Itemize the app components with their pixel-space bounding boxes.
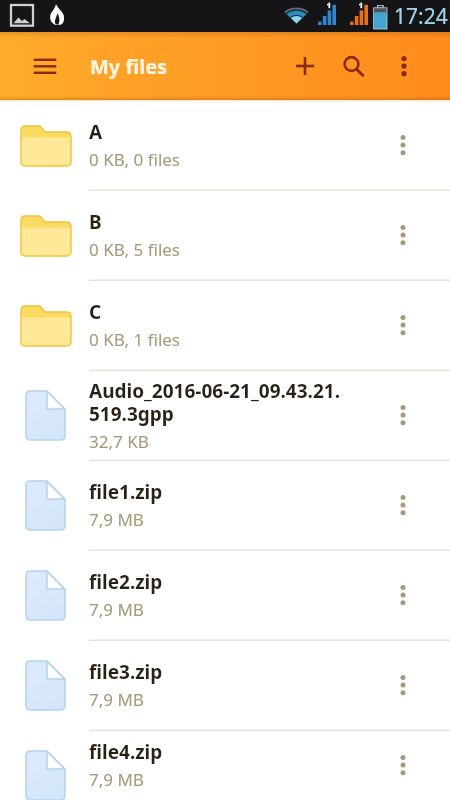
button[interactable]: Search [331, 32, 377, 100]
button[interactable]: Audio_2016-06-21_09.43.21. 519.3gpp [0, 370, 450, 460]
button[interactable]: Item options [380, 190, 426, 280]
button[interactable]: Item options [380, 730, 426, 800]
staticText: B [89, 209, 102, 235]
staticText: 7,9 MB [89, 508, 144, 531]
staticText: C [89, 299, 102, 325]
staticText: My files [90, 53, 168, 80]
button[interactable]: Item options [380, 640, 426, 730]
staticText: 0 KB, 1 files [89, 328, 181, 351]
button[interactable]: Item options [380, 280, 426, 370]
staticText: 7,9 MB [89, 688, 144, 711]
staticText: 7,9 MB [89, 598, 144, 621]
button[interactable]: Add [281, 32, 329, 100]
button[interactable]: file1.zip [0, 460, 450, 550]
button[interactable]: C [0, 280, 450, 370]
button[interactable]: Item options [380, 100, 426, 190]
button[interactable]: file4.zip [0, 730, 450, 800]
button[interactable]: file3.zip [0, 640, 450, 730]
staticText: 0 KB, 0 files [89, 148, 181, 171]
button[interactable]: Navigation menu [11, 32, 79, 100]
staticText: 7,9 MB [89, 768, 144, 791]
button[interactable]: file2.zip [0, 550, 450, 640]
button[interactable]: Item options [380, 370, 426, 460]
staticText: A [89, 119, 103, 145]
staticText: Audio_2016-06-21_09.43.21. 519.3gpp [89, 378, 341, 427]
button[interactable]: More options [381, 32, 427, 100]
button[interactable]: Item options [380, 460, 426, 550]
staticText: file1.zip [89, 479, 163, 505]
staticText: 17:24 [394, 2, 448, 31]
staticText: file4.zip [89, 739, 163, 765]
staticText: file2.zip [89, 569, 163, 595]
staticText: 32,7 KB [89, 430, 149, 453]
button[interactable]: B [0, 190, 450, 280]
staticText: 0 KB, 5 files [89, 238, 181, 261]
button[interactable]: A [0, 100, 450, 190]
button[interactable]: Item options [380, 550, 426, 640]
staticText: file3.zip [89, 659, 163, 685]
